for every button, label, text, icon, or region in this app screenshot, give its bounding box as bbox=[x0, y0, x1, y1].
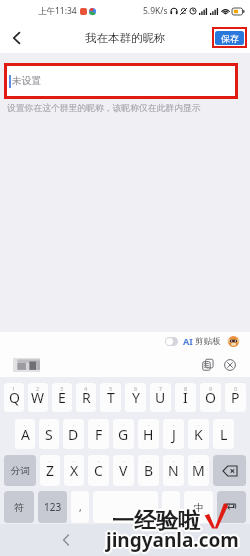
staticText: 4 bbox=[84, 385, 88, 392]
button[interactable]: 3 bbox=[52, 383, 72, 412]
staticText: 设置你在这个群里的昵称，该昵称仅在此群内显示 bbox=[7, 103, 201, 114]
staticText: 未设置 bbox=[12, 75, 42, 87]
staticText: 保存 bbox=[221, 33, 239, 44]
button[interactable]: , bbox=[71, 491, 89, 523]
button[interactable]: · bbox=[64, 455, 84, 486]
staticText: jingyanla.com bbox=[105, 528, 238, 554]
button[interactable]: · bbox=[188, 455, 209, 486]
button[interactable]: 8 bbox=[175, 383, 196, 412]
button[interactable]: Backspace bbox=[213, 455, 246, 486]
button[interactable]: 中 bbox=[184, 491, 213, 523]
staticText: · bbox=[24, 421, 26, 428]
staticText: S bbox=[45, 425, 53, 444]
staticText: W bbox=[31, 388, 45, 407]
staticText: 分词 bbox=[11, 465, 30, 477]
button[interactable]: · bbox=[138, 455, 159, 486]
button[interactable]: 6 bbox=[125, 383, 146, 412]
staticText: · bbox=[173, 421, 175, 428]
button[interactable]: 4 bbox=[76, 383, 96, 412]
button[interactable]: · bbox=[40, 455, 60, 486]
button[interactable]: ↵ bbox=[217, 491, 246, 523]
staticText: · bbox=[123, 421, 125, 428]
button[interactable]: · bbox=[163, 419, 184, 449]
staticText: jingyanla.com bbox=[107, 528, 240, 554]
button[interactable]: Clipboard bbox=[202, 359, 214, 371]
staticText: AI bbox=[183, 335, 193, 347]
button[interactable]: 5 bbox=[100, 383, 121, 412]
button[interactable]: 0 bbox=[225, 383, 246, 412]
staticText: 6 bbox=[134, 385, 138, 392]
staticText: 上午11:34 bbox=[38, 5, 77, 17]
staticText: L bbox=[220, 425, 228, 444]
staticText: J bbox=[172, 425, 176, 444]
staticText: jingyanla.com bbox=[106, 525, 239, 551]
staticText: 3 bbox=[60, 385, 64, 392]
staticText: B bbox=[144, 461, 154, 480]
staticText: · bbox=[49, 457, 51, 464]
staticText: 5.9K/s bbox=[143, 5, 168, 17]
staticText: · bbox=[198, 421, 200, 428]
staticText: · bbox=[198, 457, 200, 464]
button[interactable]: Close keyboard bbox=[224, 359, 236, 371]
staticText: · bbox=[123, 457, 125, 464]
staticText: 一经验啦 bbox=[113, 508, 201, 536]
staticText: 7 bbox=[159, 385, 163, 392]
staticText: 0 bbox=[234, 385, 238, 392]
staticText: Y bbox=[132, 388, 140, 407]
button[interactable]: · bbox=[163, 455, 184, 486]
staticText: jingyanla.com bbox=[106, 529, 239, 555]
button[interactable]: · bbox=[15, 419, 35, 449]
button[interactable] bbox=[93, 491, 158, 523]
staticText: C bbox=[94, 461, 103, 480]
staticText: , bbox=[79, 500, 82, 514]
staticText: P bbox=[231, 388, 240, 407]
button[interactable]: 2 bbox=[28, 383, 48, 412]
staticText: jingyanla.com bbox=[107, 526, 240, 552]
button[interactable]: · bbox=[88, 455, 109, 486]
staticText: 8 bbox=[184, 385, 188, 392]
button[interactable]: 未设置 bbox=[4, 63, 238, 99]
staticText: 我在本群的昵称 bbox=[85, 31, 166, 45]
staticText: 一经验啦 bbox=[111, 508, 199, 536]
staticText: U bbox=[155, 388, 166, 407]
button[interactable]: Emoji bbox=[228, 336, 239, 347]
staticText: 中 bbox=[194, 501, 204, 514]
staticText: I bbox=[183, 388, 188, 407]
button[interactable]: 符 bbox=[4, 491, 34, 523]
staticText: A bbox=[21, 425, 30, 444]
button[interactable]: Back bbox=[57, 531, 75, 549]
button[interactable]: · bbox=[113, 455, 134, 486]
button[interactable]: · bbox=[213, 419, 234, 449]
button[interactable]: 保存 bbox=[215, 31, 244, 45]
staticText: · bbox=[148, 421, 150, 428]
button[interactable]: 9 bbox=[200, 383, 221, 412]
button[interactable]: 1 bbox=[4, 383, 24, 412]
staticText: T bbox=[107, 388, 115, 407]
staticText: 符 bbox=[14, 501, 24, 514]
staticText: 一经验啦 bbox=[113, 506, 201, 534]
staticText: H bbox=[143, 425, 154, 444]
button[interactable]: 。 bbox=[162, 491, 180, 523]
button[interactable]: AI toggle bbox=[165, 337, 178, 346]
button[interactable]: · bbox=[39, 419, 59, 449]
staticText: 123 bbox=[44, 500, 62, 514]
staticText: F bbox=[95, 425, 103, 444]
staticText: Q bbox=[9, 388, 20, 407]
button[interactable]: · bbox=[88, 419, 109, 449]
staticText: V bbox=[119, 461, 128, 480]
button[interactable]: 7 bbox=[150, 383, 171, 412]
staticText: 一经验啦 bbox=[112, 509, 200, 537]
button[interactable]: Back bbox=[0, 22, 32, 53]
button[interactable]: · bbox=[138, 419, 159, 449]
staticText: 1 bbox=[12, 385, 16, 392]
button[interactable]: · bbox=[63, 419, 84, 449]
staticText: jingyanla.com bbox=[106, 527, 239, 553]
button[interactable]: · bbox=[113, 419, 134, 449]
staticText: · bbox=[73, 421, 75, 428]
button[interactable]: 分词 bbox=[4, 455, 36, 486]
staticText: 一经验啦 bbox=[111, 506, 199, 534]
button[interactable]: · bbox=[188, 419, 209, 449]
staticText: D bbox=[68, 425, 79, 444]
staticText: 2 bbox=[36, 385, 40, 392]
button[interactable]: 123 bbox=[38, 491, 67, 523]
